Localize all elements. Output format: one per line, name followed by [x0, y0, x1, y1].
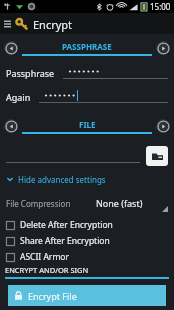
staticText: PASSPHRASE	[62, 41, 112, 52]
staticText: FILE	[79, 119, 96, 130]
staticText: 15:00	[150, 1, 171, 12]
staticText: Encrypt File	[28, 290, 77, 302]
button[interactable]: Previous section	[4, 41, 18, 55]
staticText: None (fast)	[96, 197, 143, 209]
button[interactable]: Delete After Encryption	[6, 217, 174, 233]
staticText: Again	[6, 91, 31, 103]
button[interactable]: Encrypt File	[8, 285, 166, 306]
button[interactable]: ASCII Armor	[6, 249, 174, 265]
staticText: ASCII Armor	[20, 251, 69, 263]
staticText: ENCRYPT AND/OR SIGN	[5, 265, 89, 275]
staticText: File Compression	[6, 198, 71, 209]
button[interactable]: Share After Encryption	[6, 233, 174, 249]
staticText: Encrypt	[33, 17, 73, 32]
staticText: Hide advanced settings	[18, 174, 106, 185]
button[interactable]: Previous section	[4, 119, 18, 133]
button[interactable]: Browse for file	[146, 146, 168, 166]
button[interactable]: Hide advanced settings	[6, 171, 174, 187]
button[interactable]: Open navigation drawer	[2, 15, 13, 33]
staticText: Delete After Encryption	[20, 219, 113, 231]
staticText: Passphrase	[6, 67, 55, 79]
button[interactable]: Next section	[156, 41, 170, 55]
button[interactable]: Next section	[156, 119, 170, 133]
button[interactable]: None (fast)	[88, 194, 168, 212]
staticText: Share After Encryption	[20, 235, 110, 247]
